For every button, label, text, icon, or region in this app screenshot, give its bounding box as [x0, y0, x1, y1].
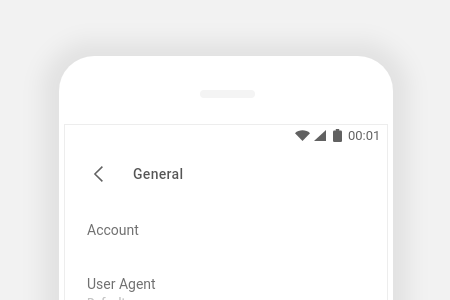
- staticText: User Agent: [87, 276, 156, 292]
- staticText: General: [133, 166, 184, 182]
- staticText: 00:01: [348, 128, 381, 143]
- staticText: Default: [87, 296, 126, 300]
- button[interactable]: Back: [86, 162, 110, 186]
- staticText: Account: [87, 222, 139, 238]
